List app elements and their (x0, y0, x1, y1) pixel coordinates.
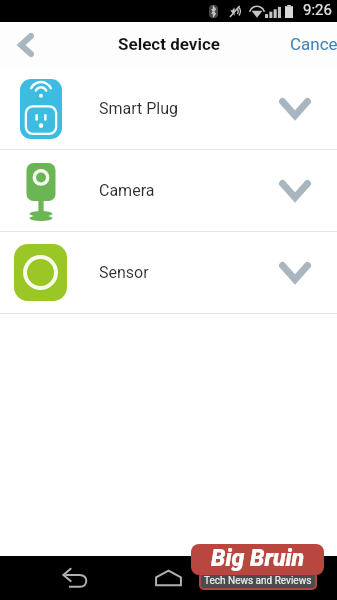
button[interactable]: Expand (266, 232, 324, 313)
staticText: Select device (118, 34, 220, 54)
staticText: Big Bruin (211, 545, 305, 572)
button[interactable]: Expand (266, 68, 324, 149)
staticText: Camera (99, 181, 155, 200)
staticText: Cancel (290, 34, 337, 54)
button[interactable]: Smart Plug (0, 68, 337, 149)
button[interactable]: Back (53, 556, 97, 600)
button[interactable]: Back (0, 22, 52, 68)
button[interactable]: Camera (0, 150, 337, 231)
staticText: 9:26 (303, 1, 332, 19)
staticText: Smart Plug (99, 99, 179, 118)
staticText: Sensor (99, 263, 149, 282)
button[interactable]: Home (146, 556, 190, 600)
button[interactable]: Sensor (0, 232, 337, 313)
button[interactable]: Cancel (285, 22, 337, 68)
staticText: Tech News and Reviews (204, 575, 312, 587)
button[interactable]: Expand (266, 150, 324, 231)
